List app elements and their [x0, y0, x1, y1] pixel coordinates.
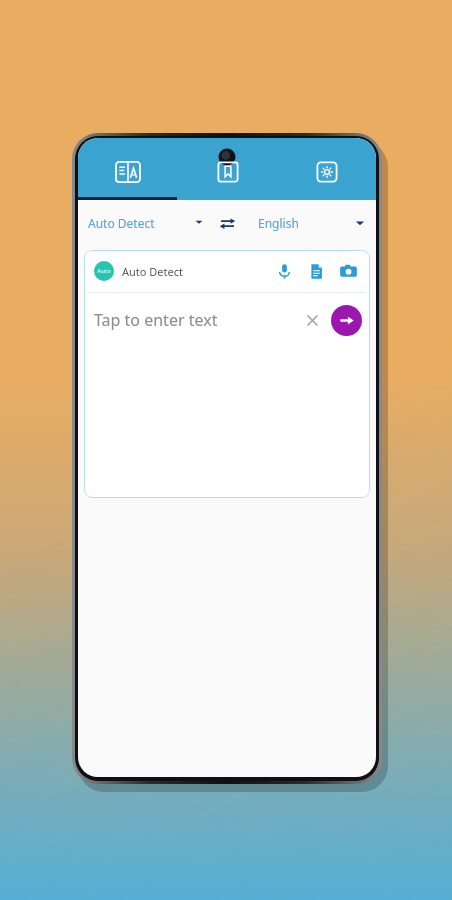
button[interactable]: English [244, 203, 366, 243]
button[interactable]: Document translate [302, 257, 330, 285]
staticText: Auto Detect [88, 215, 155, 231]
staticText: Tap to enter text [94, 309, 218, 331]
button[interactable]: Translate text [78, 160, 178, 200]
button[interactable]: Translate [331, 305, 362, 336]
button[interactable]: Phrasebook [178, 160, 277, 200]
button[interactable]: Camera translate [334, 257, 362, 285]
button[interactable]: Clear text [297, 305, 327, 335]
button[interactable]: Auto [94, 261, 114, 281]
staticText: Auto [97, 267, 111, 275]
staticText: English [258, 215, 299, 231]
button[interactable]: Swap languages [210, 206, 244, 240]
button[interactable]: Voice input [270, 257, 298, 285]
button[interactable]: Auto Detect [88, 203, 210, 243]
button[interactable]: Tap to enter text [94, 293, 297, 347]
button[interactable]: Settings [277, 160, 376, 200]
staticText: Auto Detect [122, 264, 183, 279]
